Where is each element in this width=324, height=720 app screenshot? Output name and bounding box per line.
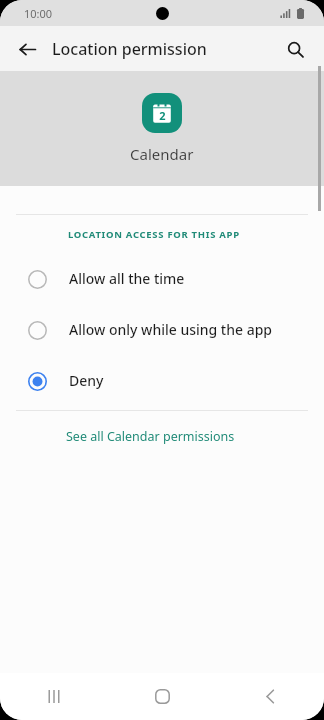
staticText: LOCATION ACCESS FOR THIS APP bbox=[68, 228, 240, 241]
button[interactable]: Recents bbox=[0, 673, 108, 720]
button[interactable]: Home bbox=[108, 673, 216, 720]
staticText: Allow all the time bbox=[69, 269, 185, 288]
staticText: Deny bbox=[69, 371, 104, 390]
staticText: 10:00 bbox=[24, 6, 53, 21]
button[interactable]: Deny bbox=[0, 355, 324, 406]
button[interactable]: Allow all the time bbox=[0, 253, 324, 304]
staticText: 2 bbox=[159, 108, 166, 123]
button[interactable]: Search bbox=[280, 34, 310, 64]
button[interactable]: Back bbox=[12, 34, 42, 64]
button[interactable]: See all Calendar permissions bbox=[0, 411, 324, 461]
button[interactable]: Back bbox=[216, 673, 324, 720]
staticText: Calendar bbox=[130, 144, 194, 164]
staticText: Allow only while using the app bbox=[69, 320, 273, 339]
button[interactable]: Allow only while using the app bbox=[0, 304, 324, 355]
staticText: See all Calendar permissions bbox=[66, 428, 235, 445]
staticText: Location permission bbox=[52, 38, 207, 60]
